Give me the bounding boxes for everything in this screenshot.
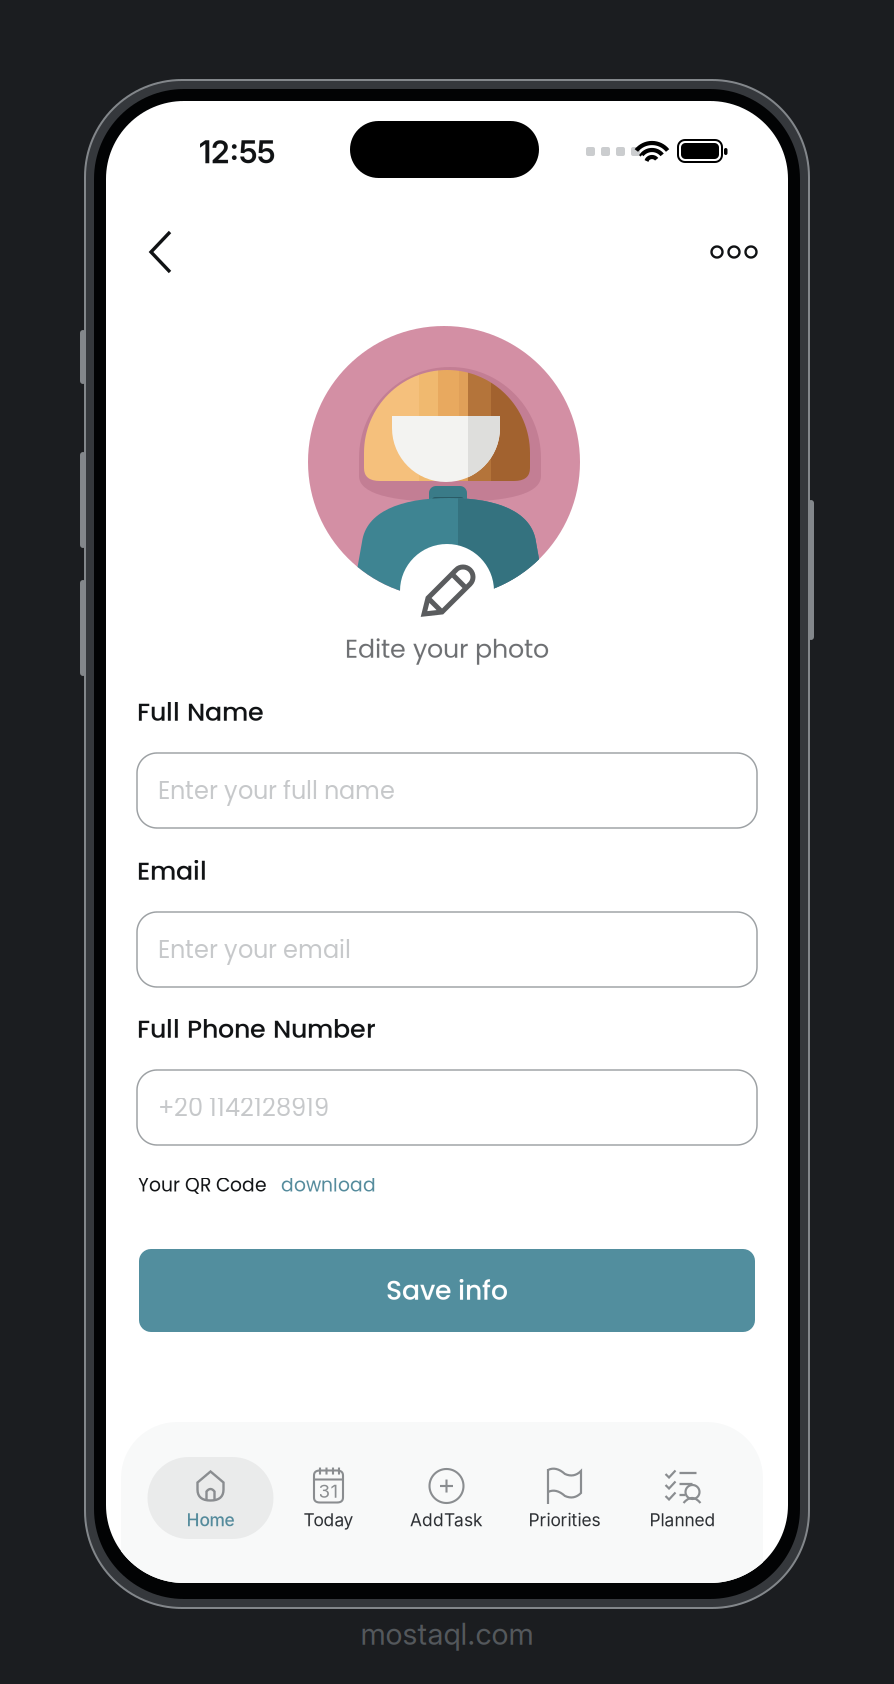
button[interactable]: Planned (623, 1457, 741, 1539)
button[interactable]: Save info (139, 1249, 755, 1332)
staticText: Full Phone Number (137, 1011, 376, 1047)
button[interactable]: Home (151, 1457, 269, 1539)
button[interactable]: 31 (269, 1457, 387, 1539)
staticText: Your QR Code (138, 1172, 267, 1198)
staticText: Full Name (137, 694, 264, 730)
staticText: Planned (649, 1509, 715, 1530)
button[interactable]: AddTask (387, 1457, 505, 1539)
staticText: +20 1142128919 (158, 1091, 329, 1124)
staticText: Enter your full name (158, 774, 395, 807)
staticText: Enter your email (158, 933, 351, 966)
button[interactable]: download (281, 1172, 376, 1198)
staticText: AddTask (410, 1509, 483, 1530)
staticText: Today (303, 1509, 353, 1530)
staticText: Priorities (528, 1509, 600, 1530)
button[interactable]: Priorities (505, 1457, 623, 1539)
staticText: Edite your photo (345, 631, 549, 667)
button[interactable]: Back (136, 220, 188, 284)
staticText: Email (137, 853, 207, 889)
staticText: Save info (386, 1272, 508, 1309)
staticText: Home (186, 1509, 234, 1530)
button[interactable]: Edit photo (400, 544, 494, 638)
staticText: 31 (318, 1480, 338, 1502)
button[interactable]: More options (700, 232, 768, 272)
staticText: 12:55 (199, 133, 275, 170)
staticText: download (281, 1172, 376, 1198)
staticText: mostaql.com (360, 1616, 533, 1652)
